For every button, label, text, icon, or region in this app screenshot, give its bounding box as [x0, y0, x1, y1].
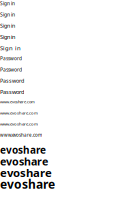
- staticText: Sign in: [0, 22, 15, 29]
- staticText: Sign in: [0, 0, 15, 6]
- staticText: www.evoshare.com: [0, 132, 42, 138]
- staticText: www.evoshare.com: [0, 99, 35, 104]
- staticText: Password: [0, 66, 22, 73]
- staticText: Sign in: [0, 44, 21, 52]
- staticText: Password: [0, 88, 24, 96]
- staticText: Sign in: [0, 11, 15, 18]
- staticText: Sign in: [0, 33, 15, 41]
- staticText: www.evoshare.com: [0, 121, 38, 127]
- staticText: evoshare: [0, 176, 55, 192]
- staticText: evoshare: [0, 165, 52, 180]
- staticText: Password: [0, 55, 22, 61]
- staticText: evoshare: [0, 154, 48, 168]
- staticText: evoshare: [0, 143, 46, 157]
- staticText: www.evoshare.com: [0, 110, 38, 116]
- staticText: Password: [0, 77, 24, 84]
